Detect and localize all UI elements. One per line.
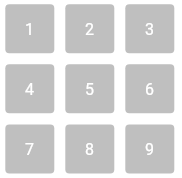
staticText: 8 [85, 140, 94, 159]
staticText: 2 [85, 20, 94, 39]
button[interactable]: 6 [125, 64, 174, 113]
staticText: 3 [145, 20, 154, 39]
staticText: 1 [25, 20, 34, 39]
button[interactable]: 9 [125, 124, 174, 173]
button[interactable]: 7 [5, 124, 54, 173]
button[interactable]: 4 [5, 64, 54, 113]
button[interactable]: 5 [65, 64, 114, 113]
button[interactable]: 8 [65, 124, 114, 173]
staticText: 4 [25, 80, 34, 99]
staticText: 9 [145, 140, 154, 159]
button[interactable]: 2 [65, 4, 114, 53]
staticText: 6 [145, 80, 154, 99]
button[interactable]: 1 [5, 4, 54, 53]
staticText: 5 [85, 80, 94, 99]
staticText: 7 [25, 140, 34, 159]
button[interactable]: 3 [125, 4, 174, 53]
